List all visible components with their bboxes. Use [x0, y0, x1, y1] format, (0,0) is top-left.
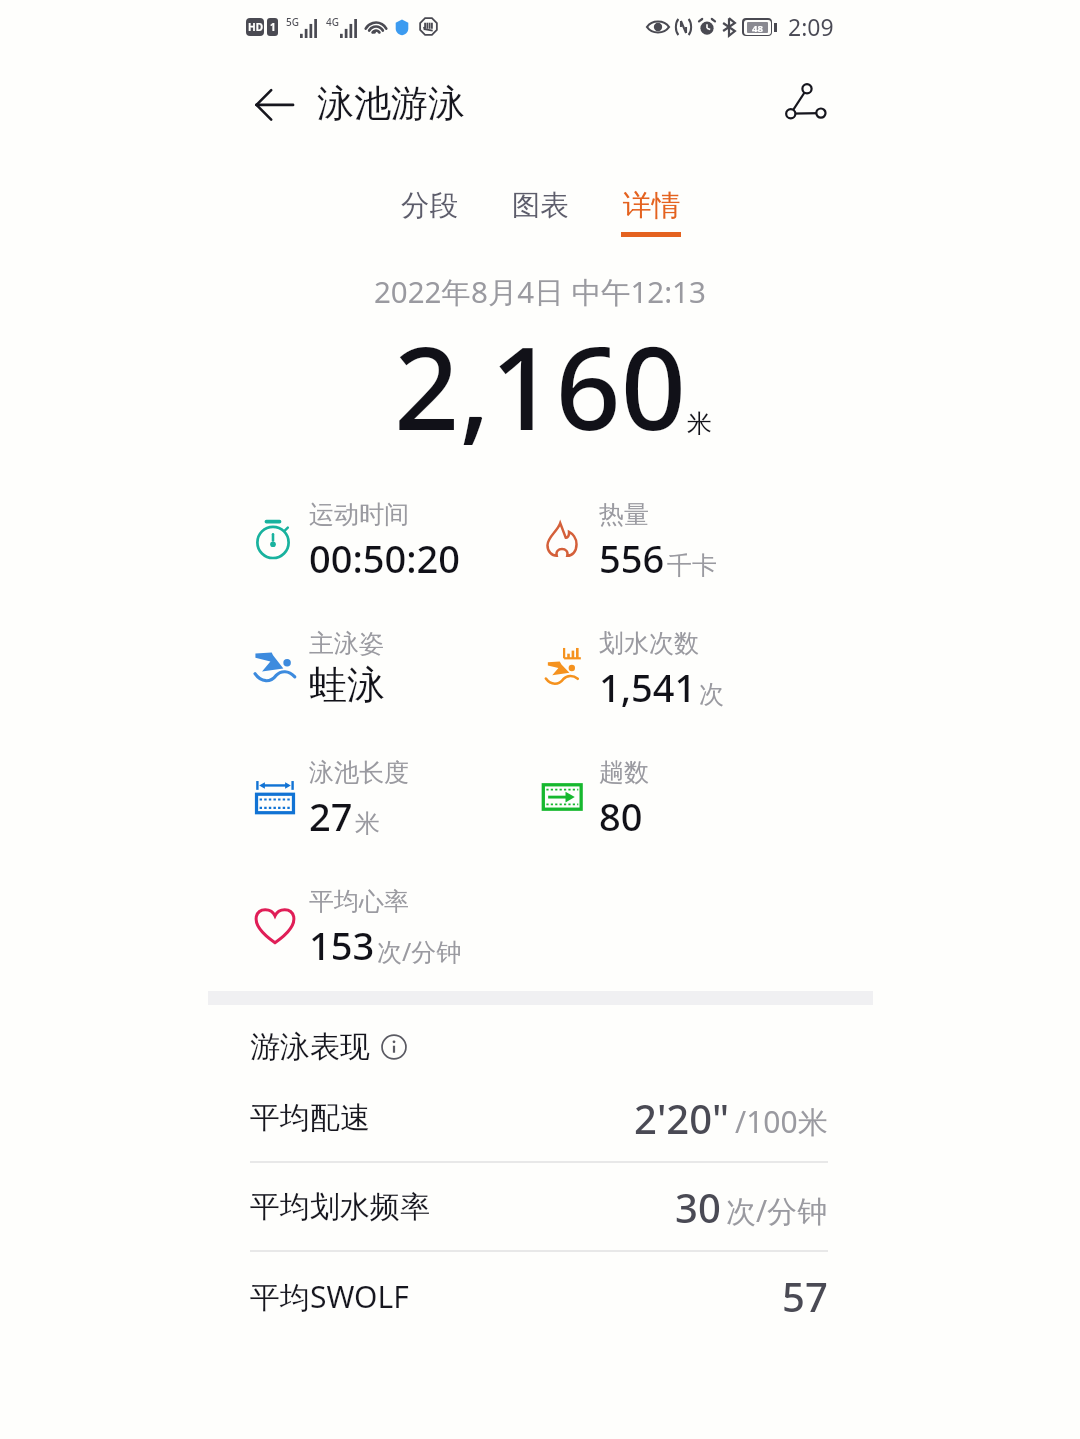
button[interactable]: 分段: [384, 184, 474, 236]
staticText: 热量: [599, 499, 649, 530]
staticText: 1: [270, 20, 276, 34]
button[interactable]: 平均划水频率: [250, 1163, 828, 1251]
staticText: 2'20": [634, 1091, 730, 1145]
staticText: 划水次数: [599, 628, 699, 659]
staticText: 趟数: [599, 757, 649, 788]
button[interactable]: Share: [778, 76, 836, 134]
staticText: 泳池长度: [309, 757, 409, 788]
button[interactable]: Info: [381, 1034, 407, 1060]
staticText: 次/分钟: [377, 934, 462, 968]
staticText: 5G: [286, 15, 299, 29]
staticText: 80: [599, 790, 643, 842]
staticText: 次/分钟: [726, 1190, 828, 1231]
staticText: 27: [309, 790, 353, 842]
staticText: 米: [687, 408, 712, 439]
staticText: 运动时间: [309, 499, 409, 530]
staticText: 2:09: [788, 11, 834, 42]
staticText: 48: [752, 22, 763, 33]
staticText: /100米: [735, 1101, 828, 1142]
staticText: HD: [248, 20, 263, 34]
staticText: 泳池游泳: [317, 80, 465, 127]
staticText: 2022年8月4日 中午12:13: [374, 271, 706, 311]
staticText: 千卡: [667, 550, 717, 581]
staticText: 556: [599, 532, 665, 584]
staticText: 平均心率: [309, 886, 409, 917]
button[interactable]: 平均配速: [250, 1074, 828, 1162]
staticText: 分段: [401, 188, 458, 224]
staticText: 30: [675, 1180, 721, 1234]
staticText: 游泳表现: [250, 1028, 370, 1066]
staticText: 图表: [512, 188, 569, 224]
staticText: 详情: [623, 188, 680, 224]
staticText: 1,541: [599, 661, 697, 713]
staticText: 平均划水频率: [250, 1188, 430, 1226]
staticText: 平均SWOLF: [250, 1276, 409, 1317]
staticText: 平均配速: [250, 1099, 370, 1137]
staticText: 蛙泳: [309, 661, 385, 709]
staticText: 153: [309, 919, 375, 971]
button[interactable]: 详情: [606, 184, 696, 241]
button[interactable]: 平均SWOLF: [250, 1252, 828, 1340]
button[interactable]: 图表: [495, 184, 585, 236]
staticText: 4G: [326, 15, 339, 29]
button[interactable]: Back: [246, 74, 306, 134]
staticText: 次: [699, 679, 724, 710]
staticText: 57: [782, 1269, 828, 1323]
staticText: 米: [355, 808, 380, 839]
staticText: 主泳姿: [309, 628, 384, 659]
staticText: 2,160: [394, 308, 686, 463]
staticText: 00:50:20: [309, 532, 461, 584]
